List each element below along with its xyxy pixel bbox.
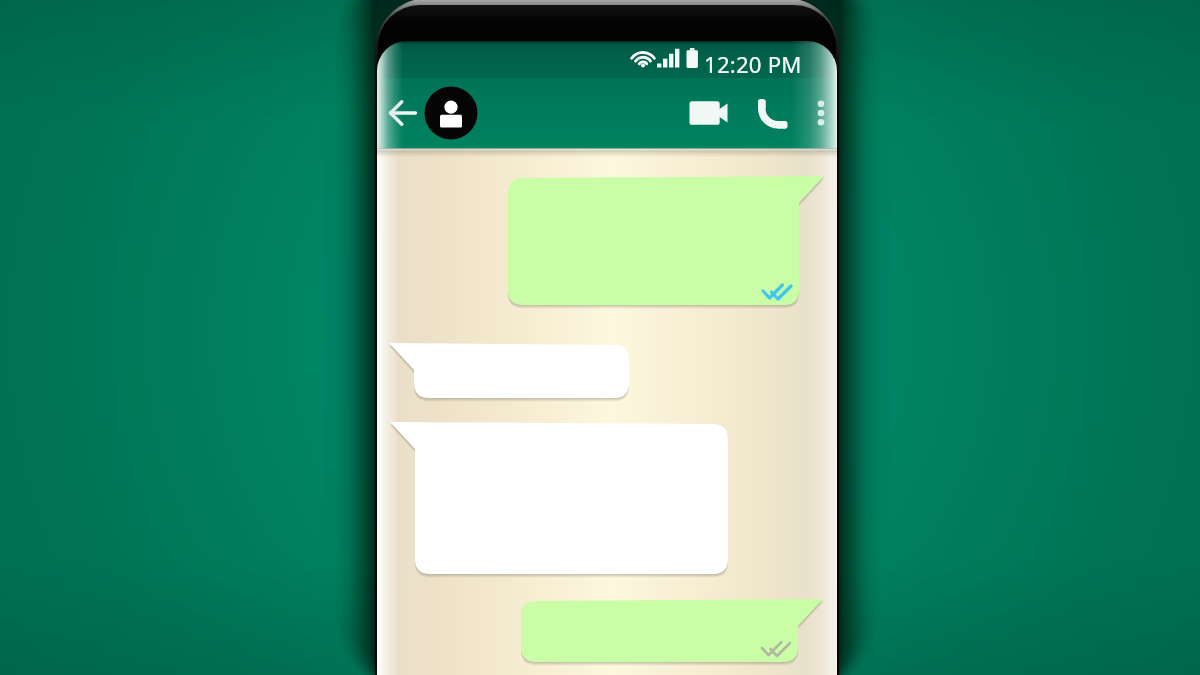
button[interactable]: More options (806, 91, 836, 135)
button[interactable]: Video call (683, 89, 735, 137)
button[interactable]: Contact profile (424, 86, 478, 140)
button[interactable] (521, 598, 823, 668)
button[interactable] (390, 421, 728, 580)
button[interactable]: Back (384, 91, 428, 135)
button[interactable]: Voice call (753, 92, 795, 134)
button[interactable] (389, 342, 629, 404)
button[interactable] (508, 175, 824, 311)
staticText: 12:20 PM (704, 49, 802, 79)
